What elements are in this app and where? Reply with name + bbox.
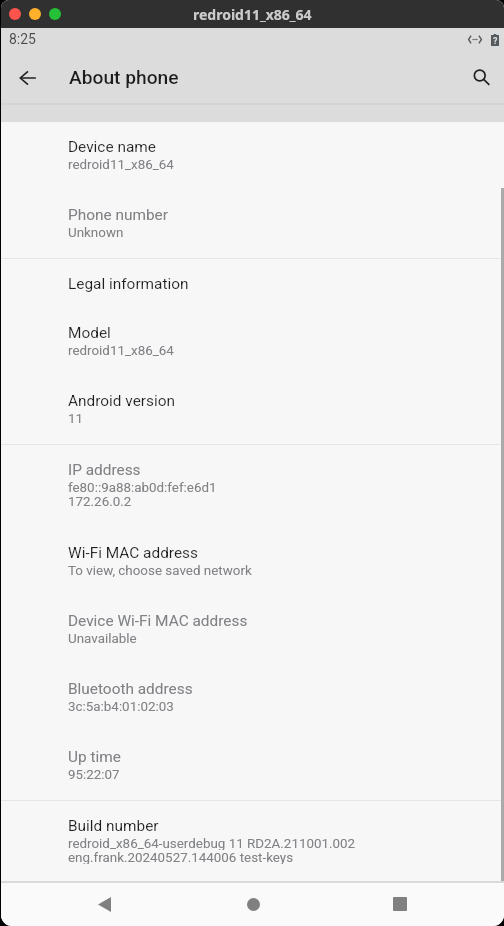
button[interactable]: Home xyxy=(232,883,274,925)
staticText: Device Wi-Fi MAC address xyxy=(68,612,248,630)
button[interactable]: Legal information xyxy=(1,259,504,308)
staticText: Wi-Fi MAC address xyxy=(68,544,198,562)
staticText: Model xyxy=(68,324,111,342)
button[interactable]: Bluetooth address xyxy=(1,664,504,732)
button[interactable]: Search xyxy=(463,60,499,96)
staticText: redroid11_x86_64 xyxy=(68,343,174,357)
button[interactable]: IP address xyxy=(1,445,504,528)
staticText: 11 xyxy=(68,411,84,425)
staticText: fe80::9a88:ab0d:fef:e6d1 xyxy=(68,480,217,494)
staticText: About phone xyxy=(69,66,179,89)
staticText: eng.frank.20240527.144006 test-keys xyxy=(68,850,294,864)
staticText: redroid11_x86_64 xyxy=(193,5,312,24)
button[interactable]: Navigate up xyxy=(10,60,46,96)
button[interactable]: Wi-Fi MAC address xyxy=(1,528,504,596)
staticText: Bluetooth address xyxy=(68,680,193,698)
staticText: Unknown xyxy=(68,225,124,239)
button[interactable]: Recent apps xyxy=(379,883,421,925)
staticText: IP address xyxy=(68,461,141,479)
button[interactable]: Build number xyxy=(1,801,504,881)
staticText: Legal information xyxy=(68,275,189,293)
button[interactable]: Model xyxy=(1,308,504,376)
staticText: Up time xyxy=(68,748,121,766)
staticText: Android version xyxy=(68,392,175,410)
staticText: To view, choose saved network xyxy=(68,563,252,577)
button[interactable]: Up time xyxy=(1,732,504,800)
staticText: Phone number xyxy=(68,206,168,224)
button[interactable]: Device name xyxy=(1,122,504,190)
staticText: 8:25 xyxy=(9,31,36,47)
staticText: redroid11_x86_64 xyxy=(68,157,174,171)
staticText: ? xyxy=(493,36,498,47)
staticText: redroid_x86_64-userdebug 11 RD2A.211001.… xyxy=(68,836,356,850)
button[interactable]: Phone number xyxy=(1,190,504,258)
staticText: 172.26.0.2 xyxy=(68,494,132,508)
button[interactable]: Back xyxy=(83,883,125,925)
staticText: 3c:5a:b4:01:02:03 xyxy=(68,699,174,713)
staticText: 95:22:07 xyxy=(68,767,120,781)
staticText: Device name xyxy=(68,138,156,156)
button[interactable]: Android version xyxy=(1,376,504,444)
staticText: Unavailable xyxy=(68,631,137,645)
button[interactable]: Device Wi-Fi MAC address xyxy=(1,596,504,664)
staticText: Build number xyxy=(68,817,159,835)
